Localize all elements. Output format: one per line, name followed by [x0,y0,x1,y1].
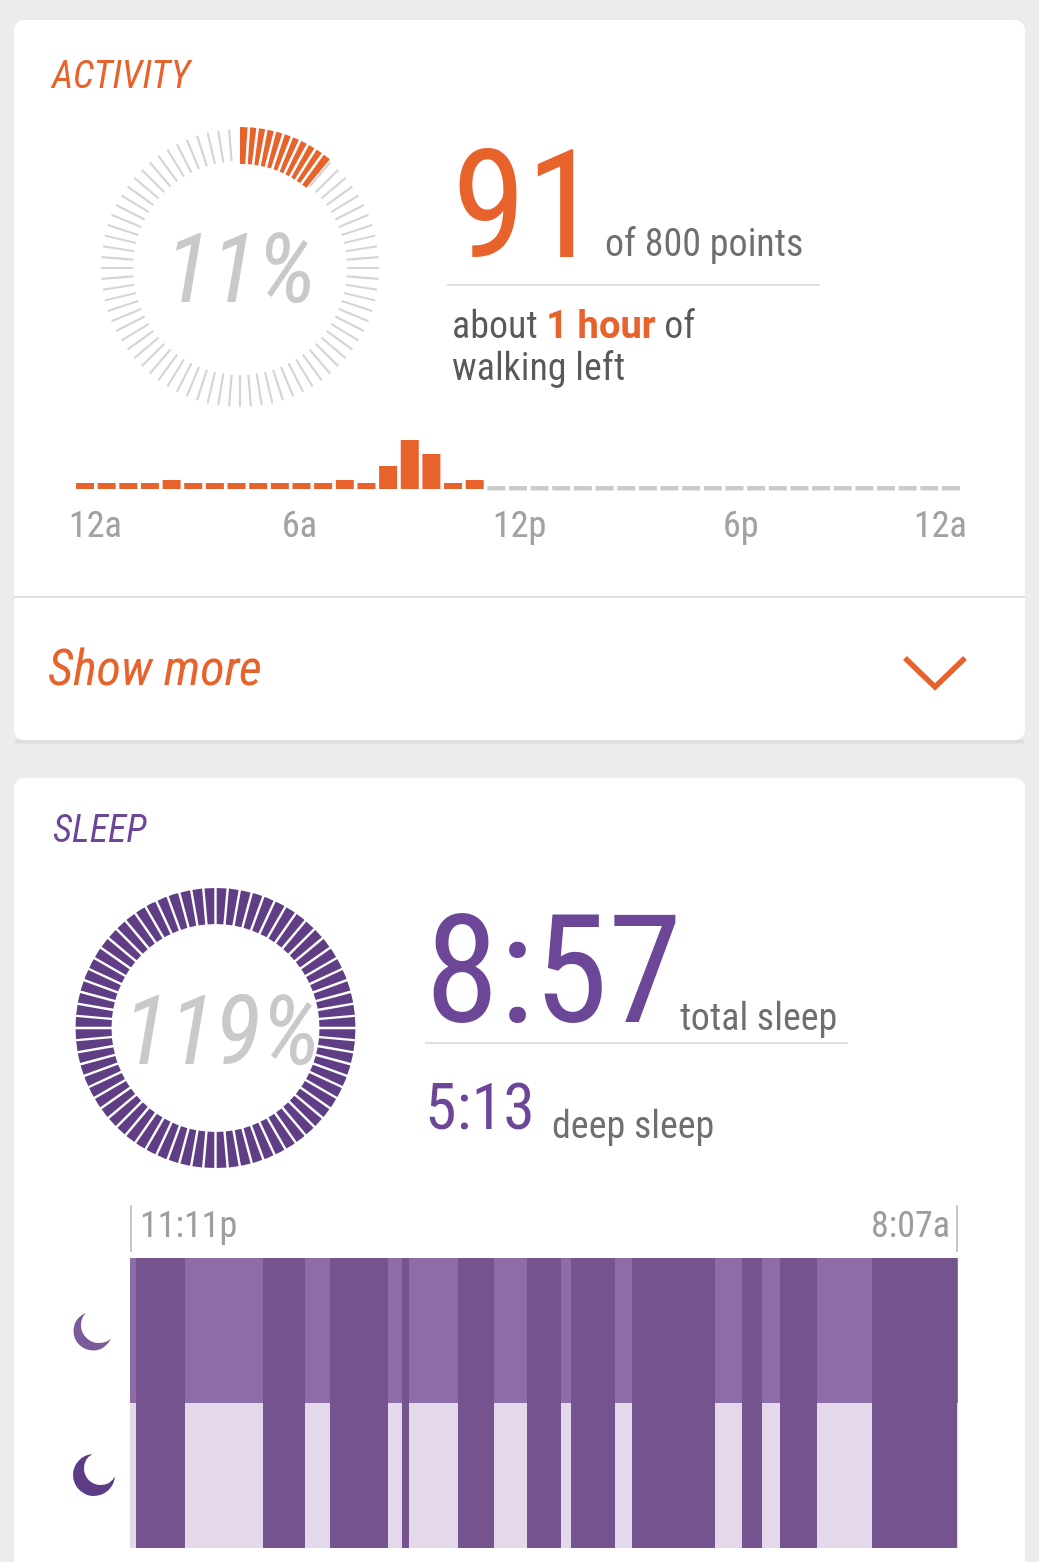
staticText: of 800 points [605,221,804,266]
button[interactable]: SLEEP [14,778,1025,1562]
staticText: ACTIVITY [52,53,191,98]
staticText: 8:57 [425,883,683,1059]
staticText: total sleep [680,995,838,1040]
staticText: Show more [48,639,262,698]
staticText: 12a [69,504,122,546]
staticText: 91 [452,118,601,294]
staticText: 6p [723,504,759,546]
staticText: deep sleep [552,1103,715,1148]
staticText: 11% [165,213,316,326]
button[interactable]: Show more [14,598,1025,740]
staticText: 119% [123,975,320,1088]
staticText: 5:13 [425,1070,535,1145]
staticText: 12a [914,504,967,546]
staticText: 11:11p [140,1204,238,1246]
staticText: 8:07a [871,1204,950,1246]
staticText: 6a [282,504,318,546]
staticText: SLEEP [53,807,147,852]
staticText: 12p [493,504,547,546]
staticText: about 1 hour of walking left [452,303,696,390]
button[interactable]: ACTIVITY [14,20,1025,740]
